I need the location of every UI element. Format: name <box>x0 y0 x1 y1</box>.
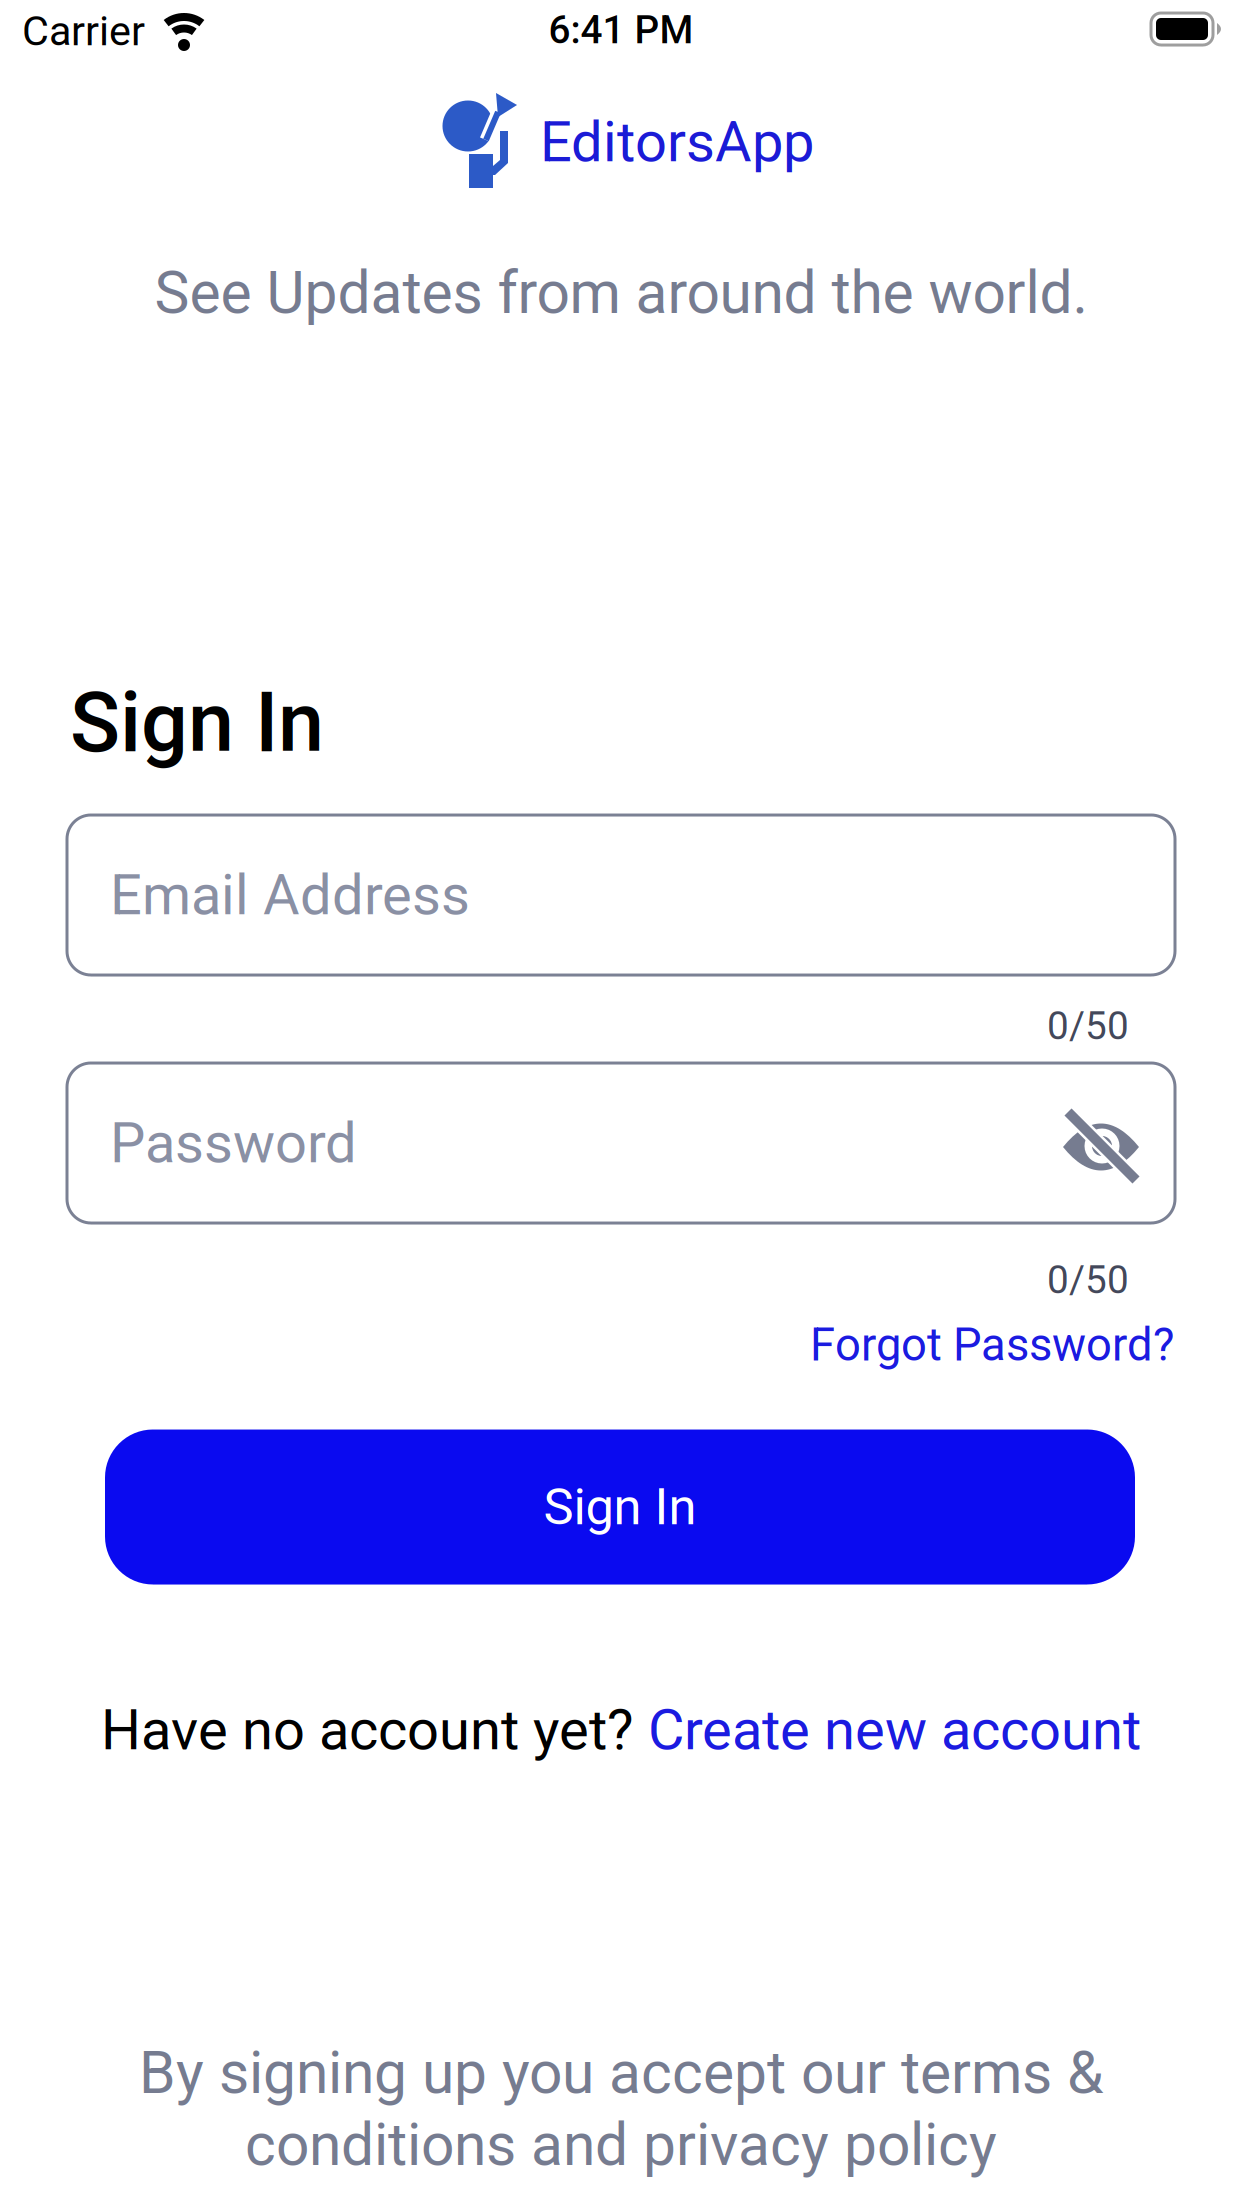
staticText: Carrier <box>22 7 145 55</box>
button[interactable]: Sign In <box>105 1429 1135 1584</box>
staticText: 6:41 PM <box>548 8 693 52</box>
staticText: EditorsApp <box>540 110 814 174</box>
staticText: Have no account yet? <box>101 1698 633 1762</box>
staticText: By signing up you accept our terms & <box>139 2039 1103 2106</box>
staticText: conditions and privacy policy <box>245 2111 997 2178</box>
button[interactable]: Create new account <box>648 1698 1141 1762</box>
staticText: Forgot Password? <box>810 1319 1174 1371</box>
staticText: Sign In <box>543 1478 696 1536</box>
staticText: Create new account <box>648 1698 1141 1762</box>
staticText: Email Address <box>110 863 470 927</box>
button[interactable]: Password <box>67 1063 1175 1223</box>
staticText: Sign In <box>70 676 324 770</box>
button[interactable]: Email Address <box>67 815 1175 975</box>
staticText: Password <box>110 1111 357 1175</box>
button[interactable]: Forgot Password? <box>810 1319 1174 1371</box>
staticText: 0/50 <box>1047 1004 1129 1048</box>
staticText: See Updates from around the world. <box>154 259 1087 326</box>
staticText: 0/50 <box>1047 1258 1129 1302</box>
